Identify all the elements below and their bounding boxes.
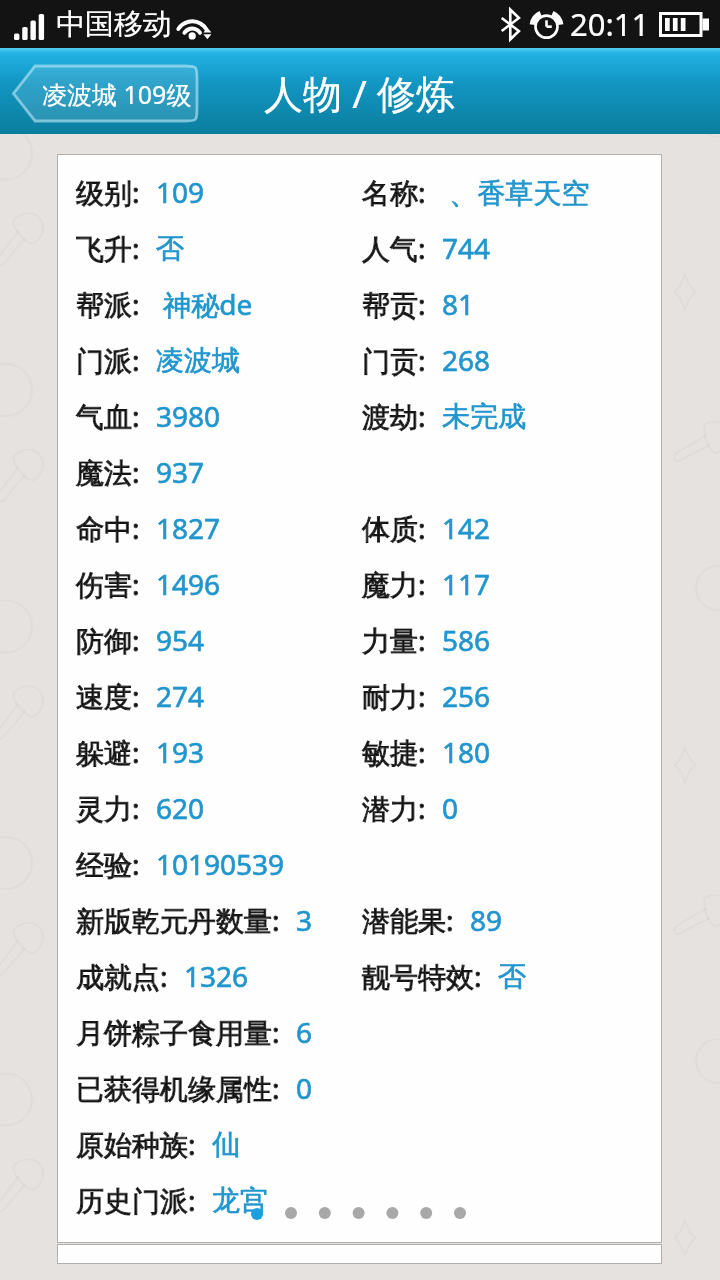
staticText: 未完成: [442, 399, 526, 434]
staticText: 268: [442, 341, 491, 379]
staticText: 人气:: [362, 229, 426, 267]
staticText: 靓号特效:: [362, 957, 482, 995]
staticText: 620: [156, 789, 205, 827]
staticText: 魔法:: [76, 453, 140, 491]
staticText: 灵力:: [76, 789, 140, 827]
staticText: 3: [296, 901, 313, 939]
staticText: 伤害:: [76, 565, 140, 603]
staticText: 速度:: [76, 677, 140, 715]
staticText: 1827: [156, 509, 221, 547]
staticText: 帮派:: [76, 285, 140, 323]
staticText: 门派:: [76, 341, 140, 379]
staticText: 灵力:: [76, 789, 140, 827]
staticText: 飞升:: [76, 229, 140, 267]
staticText: 193: [156, 733, 205, 771]
staticText: 门贡:: [362, 341, 426, 379]
staticText: 744: [442, 229, 491, 267]
staticText: 凌波城: [156, 343, 240, 378]
staticText: 89: [470, 901, 503, 939]
staticText: 飞升:: [76, 229, 140, 267]
staticText: 潜力:: [362, 789, 426, 827]
staticText: 81: [442, 285, 475, 323]
staticText: 仙: [212, 1127, 240, 1162]
staticText: 体质:: [362, 509, 426, 547]
staticText: 渡劫:: [362, 397, 426, 435]
staticText: 门贡:: [362, 341, 426, 379]
staticText: 月饼粽子食用量:: [76, 1013, 280, 1051]
staticText: 142: [442, 509, 491, 547]
staticText: 否: [498, 959, 526, 994]
staticText: 937: [156, 453, 205, 491]
staticText: 气血:: [76, 397, 140, 435]
staticText: 256: [442, 677, 491, 715]
staticText: 仙: [212, 1127, 240, 1162]
staticText: 渡劫:: [362, 397, 426, 435]
staticText: 成就点:: [76, 957, 168, 995]
staticText: 0: [442, 789, 459, 827]
staticText: 1496: [156, 565, 221, 603]
staticText: 81: [442, 285, 475, 323]
staticText: 6: [296, 1013, 313, 1051]
staticText: 新版乾元丹数量:: [76, 901, 280, 939]
staticText: 月饼粽子食用量:: [76, 1013, 280, 1051]
staticText: 未完成: [442, 399, 526, 434]
staticText: 3980: [156, 397, 221, 435]
staticText: 潜力:: [362, 789, 426, 827]
staticText: 神秘de: [156, 285, 253, 323]
staticText: 耐力:: [362, 677, 426, 715]
staticText: 敏捷:: [362, 733, 426, 771]
staticText: 180: [442, 733, 491, 771]
staticText: 10190539: [156, 845, 285, 883]
staticText: 门派:: [76, 341, 140, 379]
staticText: 3980: [156, 397, 221, 435]
staticText: 躲避:: [76, 733, 140, 771]
staticText: 954: [156, 621, 205, 659]
staticText: 躲避:: [76, 733, 140, 771]
staticText: 620: [156, 789, 205, 827]
staticText: 敏捷:: [362, 733, 426, 771]
staticText: 力量:: [362, 621, 426, 659]
staticText: 体质:: [362, 509, 426, 547]
staticText: 586: [442, 621, 491, 659]
staticText: 命中:: [76, 509, 140, 547]
staticText: 586: [442, 621, 491, 659]
staticText: 3: [296, 901, 313, 939]
staticText: 经验:: [76, 845, 140, 883]
staticText: 耐力:: [362, 677, 426, 715]
staticText: 否: [498, 959, 526, 994]
staticText: 109: [156, 173, 205, 211]
staticText: 名称:: [362, 173, 426, 211]
staticText: 命中:: [76, 509, 140, 547]
staticText: 否: [156, 231, 184, 266]
other: Battery: [659, 12, 709, 37]
staticText: 成就点:: [76, 957, 168, 995]
staticText: 268: [442, 341, 491, 379]
staticText: 修炼 / 属性: [296, 1258, 424, 1264]
staticText: 1326: [184, 957, 249, 995]
staticText: 已获得机缘属性:: [76, 1069, 280, 1107]
staticText: 180: [442, 733, 491, 771]
staticText: 20:11: [570, 3, 650, 45]
staticText: 1496: [156, 565, 221, 603]
staticText: 0: [442, 789, 459, 827]
staticText: 193: [156, 733, 205, 771]
staticText: 744: [442, 229, 491, 267]
staticText: 89: [470, 901, 503, 939]
other: Wi-Fi: [177, 13, 215, 41]
button[interactable]: 返回 凌波城 109级: [12, 66, 197, 121]
staticText: 6: [296, 1013, 313, 1051]
staticText: 历史门派:: [76, 1181, 196, 1219]
staticText: 经验:: [76, 845, 140, 883]
staticText: 名称:: [362, 173, 426, 211]
staticText: 256: [442, 677, 491, 715]
staticText: 级别:: [76, 173, 140, 211]
staticText: 954: [156, 621, 205, 659]
staticText: 帮派:: [76, 285, 140, 323]
staticText: 防御:: [76, 621, 140, 659]
staticText: 神秘de: [156, 285, 253, 323]
staticText: 1326: [184, 957, 249, 995]
staticText: 历史门派:: [76, 1181, 196, 1219]
staticText: 、香草天空: [442, 173, 590, 211]
staticText: 靓号特效:: [362, 957, 482, 995]
staticText: 魔法:: [76, 453, 140, 491]
